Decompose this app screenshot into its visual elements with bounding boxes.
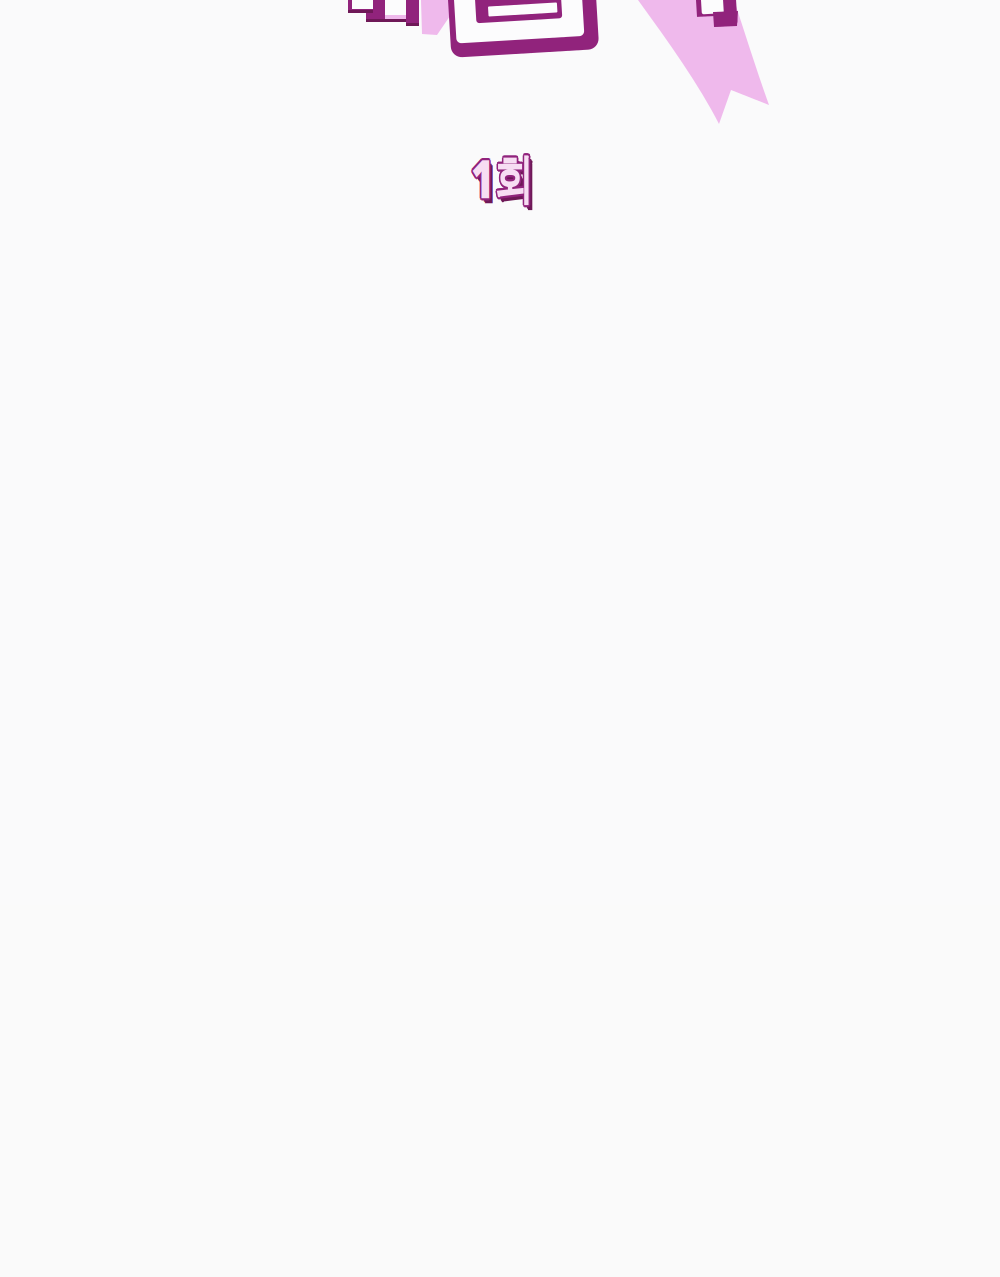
staticText: 1회 bbox=[458, 144, 542, 214]
staticText: 1회 bbox=[463, 146, 547, 216]
staticText: 1회 bbox=[462, 142, 546, 213]
staticText: 1회 bbox=[460, 142, 544, 213]
staticText: 1회 bbox=[458, 140, 542, 211]
staticText: 1회 bbox=[458, 142, 542, 213]
button[interactable]: Episode 1 page bbox=[0, 0, 1000, 1277]
staticText: 1회 bbox=[462, 144, 546, 214]
staticText: 1회 bbox=[460, 144, 544, 215]
staticText: 1회 bbox=[460, 140, 544, 211]
staticText: 1회 bbox=[465, 147, 549, 218]
staticText: 1회 bbox=[462, 140, 546, 211]
